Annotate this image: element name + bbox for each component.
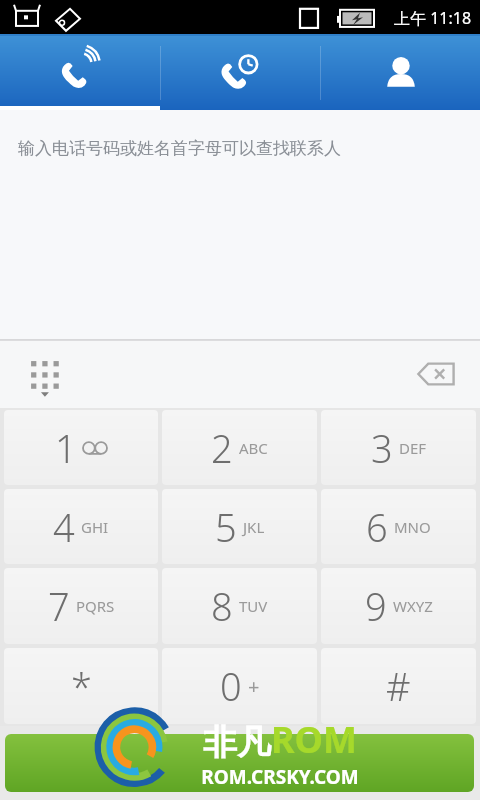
button[interactable]: 3 — [321, 410, 476, 485]
button[interactable]: Contacts — [321, 36, 480, 110]
staticText: DEF — [399, 438, 427, 458]
button[interactable]: Keypad options — [12, 342, 76, 406]
button[interactable]: 7 — [4, 568, 158, 644]
staticText: 1 — [55, 422, 77, 474]
button[interactable]: 5 — [162, 489, 317, 564]
button[interactable]: 2 — [162, 410, 317, 485]
staticText: GHI — [81, 517, 109, 537]
button[interactable]: 9 — [321, 568, 476, 644]
button[interactable]: 6 — [321, 489, 476, 564]
button[interactable]: * — [4, 648, 158, 724]
button[interactable]: 4 — [4, 489, 158, 564]
staticText: MNO — [394, 517, 431, 537]
button[interactable]: Delete — [404, 342, 468, 406]
button[interactable]: Dialer — [0, 36, 160, 110]
staticText: * — [71, 660, 92, 712]
staticText: 输入电话号码或姓名首字母可以查找联系人 — [18, 138, 341, 159]
button[interactable]: 1 — [4, 410, 158, 485]
staticText: 上午 11:18 — [394, 7, 472, 29]
staticText: 非凡 — [203, 721, 271, 764]
staticText: ROM.CRSKY.COM — [201, 764, 359, 790]
staticText: ABC — [239, 438, 268, 458]
staticText: 3 — [371, 422, 393, 474]
staticText: TUV — [239, 596, 268, 616]
staticText: 9 — [365, 580, 387, 632]
staticText: WXYZ — [393, 596, 433, 616]
staticText: PQRS — [76, 596, 115, 616]
staticText: 7 — [48, 580, 70, 632]
staticText: # — [386, 660, 411, 712]
staticText: 8 — [211, 580, 233, 632]
button[interactable]: Call log — [161, 36, 320, 110]
button[interactable]: 0 — [162, 648, 317, 724]
staticText: 5 — [215, 501, 237, 553]
staticText: ROM — [271, 715, 358, 764]
button[interactable]: Call — [5, 734, 474, 792]
staticText: 0 — [220, 660, 242, 712]
staticText: 2 — [211, 422, 233, 474]
button[interactable]: 8 — [162, 568, 317, 644]
button[interactable]: # — [321, 648, 476, 724]
staticText: 6 — [366, 501, 388, 553]
staticText: + — [248, 673, 260, 700]
staticText: 4 — [53, 501, 75, 553]
staticText: JKL — [243, 517, 265, 537]
